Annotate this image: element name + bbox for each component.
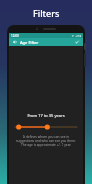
staticText: Age Filter	[20, 40, 39, 45]
staticText: 12:00	[11, 34, 19, 38]
staticText: Filters	[33, 7, 60, 19]
staticText: From 17 to 35 years	[27, 113, 65, 118]
button[interactable]: Age range slider	[15, 123, 77, 131]
button[interactable]: Apply	[74, 39, 80, 45]
button[interactable]: Back	[12, 39, 18, 45]
staticText: It defines whom you can see in suggestio…	[15, 135, 77, 147]
